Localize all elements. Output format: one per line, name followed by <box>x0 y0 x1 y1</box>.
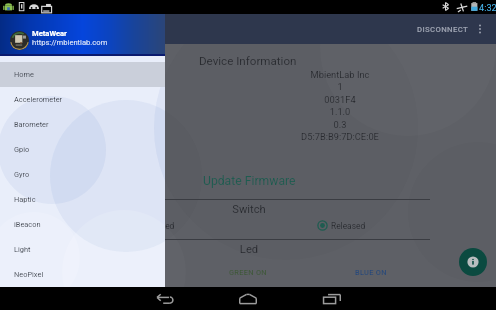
staticText: Device Information <box>199 54 297 68</box>
button[interactable]: Gyro <box>0 162 165 187</box>
button[interactable]: Haptic <box>0 187 165 212</box>
button[interactable]: Device information <box>459 248 487 276</box>
staticText: Pressed <box>144 221 175 231</box>
staticText: BLUE ON <box>355 268 387 277</box>
button[interactable]: Accelerometer <box>0 87 165 112</box>
button[interactable]: Light <box>0 237 165 262</box>
button[interactable]: Gpio <box>0 137 165 162</box>
staticText: GREEN ON <box>229 268 267 277</box>
button[interactable]: iBeacon <box>0 212 165 237</box>
button[interactable]: Home <box>0 62 165 87</box>
button[interactable]: Barometer <box>0 112 165 137</box>
button[interactable]: Pressed <box>128 218 177 233</box>
staticText: Led <box>214 243 284 256</box>
staticText: Gpio <box>14 145 30 154</box>
staticText: Haptic <box>14 195 36 204</box>
staticText: https://mbientlab.com <box>32 38 108 47</box>
staticText: Gyro <box>14 170 30 179</box>
button[interactable]: Update Firmware <box>195 170 304 192</box>
button[interactable]: More options <box>470 14 490 44</box>
staticText: 0.3 <box>260 119 420 130</box>
staticText: iBeacon <box>14 220 41 229</box>
button[interactable]: Back <box>144 287 186 310</box>
staticText: 0031F4 <box>260 94 420 105</box>
button[interactable]: Recent apps <box>311 287 353 310</box>
staticText: 1.1.0 <box>260 106 420 117</box>
button[interactable]: DISCONNECT <box>409 14 477 44</box>
button[interactable]: Home <box>227 287 269 310</box>
staticText: Home <box>14 70 34 79</box>
button[interactable]: Released <box>315 218 368 233</box>
staticText: Released <box>331 221 366 231</box>
staticText: MbientLab Inc <box>260 69 420 80</box>
staticText: D5:7B:B9:7D:CE:0E <box>260 131 420 142</box>
staticText: NeoPixel <box>14 270 44 279</box>
staticText: DISCONNECT <box>417 25 469 34</box>
staticText: Accelerometer <box>14 95 63 104</box>
staticText: MetaWear <box>32 29 67 38</box>
button[interactable]: BLUE ON <box>347 264 395 281</box>
button[interactable]: NeoPixel <box>0 262 165 287</box>
staticText: Switch <box>214 203 284 216</box>
button[interactable]: GREEN ON <box>221 264 275 281</box>
staticText: Update Firmware <box>203 174 296 188</box>
staticText: Barometer <box>14 120 49 129</box>
staticText: 4:32 <box>479 2 496 13</box>
staticText: Light <box>14 245 31 254</box>
